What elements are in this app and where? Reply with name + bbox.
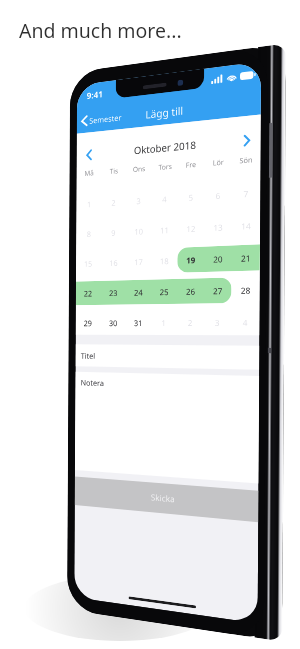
button[interactable]: 29 xyxy=(76,308,101,338)
button[interactable]: 2 xyxy=(177,307,204,338)
staticText: Tors xyxy=(158,162,172,173)
staticText: 26 xyxy=(186,285,196,297)
staticText: 8 xyxy=(87,228,91,239)
staticText: 4 xyxy=(243,316,248,328)
staticText: 16 xyxy=(109,257,118,268)
staticText: 21 xyxy=(241,252,252,264)
staticText: 3 xyxy=(215,317,220,328)
staticText: 31 xyxy=(134,317,143,328)
staticText: 29 xyxy=(84,317,93,328)
staticText: 4 xyxy=(162,193,167,204)
staticText: 19 xyxy=(186,254,196,265)
button[interactable]: 25 xyxy=(151,276,177,307)
button[interactable]: 1 xyxy=(76,188,101,219)
staticText: 9:41 xyxy=(87,87,103,101)
staticText: 11 xyxy=(160,224,170,235)
staticText: Lör xyxy=(213,157,224,169)
staticText: 22 xyxy=(84,288,93,298)
staticText: 18 xyxy=(160,255,169,266)
staticText: 27 xyxy=(213,285,223,296)
staticText: 6 xyxy=(216,189,221,201)
staticText: Semester xyxy=(89,111,122,126)
staticText: 30 xyxy=(109,317,118,328)
button[interactable]: 26 xyxy=(177,275,204,307)
staticText: Notera xyxy=(81,377,104,388)
staticText: 2 xyxy=(188,317,193,328)
button[interactable]: Semester xyxy=(77,107,128,131)
button[interactable]: 8 xyxy=(76,218,101,249)
staticText: 23 xyxy=(109,287,118,298)
staticText: 14 xyxy=(241,220,252,232)
button[interactable]: 24 xyxy=(126,276,151,307)
staticText: 24 xyxy=(134,287,143,298)
staticText: 1 xyxy=(161,317,166,328)
button[interactable]: 27 xyxy=(204,274,231,307)
staticText: 2 xyxy=(111,197,116,208)
staticText: 7 xyxy=(243,188,249,199)
staticText: Fre xyxy=(186,160,197,171)
staticText: 3 xyxy=(136,195,141,206)
button[interactable]: 23 xyxy=(101,277,126,308)
staticText: 17 xyxy=(134,256,144,267)
staticText: Må xyxy=(84,168,94,179)
staticText: Lägg till xyxy=(145,104,183,122)
button[interactable]: Skicka xyxy=(75,476,258,522)
button[interactable]: 3 xyxy=(204,306,231,338)
button[interactable]: Next month xyxy=(236,128,257,151)
staticText: Ons xyxy=(133,164,146,175)
staticText: 5 xyxy=(188,191,193,203)
staticText: 25 xyxy=(160,286,169,297)
button[interactable]: 4 xyxy=(231,306,260,338)
button[interactable]: 19 xyxy=(177,244,204,276)
staticText: 15 xyxy=(84,258,93,269)
button[interactable]: 22 xyxy=(76,278,101,308)
staticText: Titel xyxy=(81,350,95,361)
staticText: 28 xyxy=(241,284,251,296)
button[interactable]: 21 xyxy=(231,241,260,274)
staticText: And much more... xyxy=(19,17,182,44)
staticText: Tis xyxy=(110,166,119,177)
staticText: 12 xyxy=(186,223,196,234)
button[interactable]: 31 xyxy=(125,307,151,338)
staticText: 9 xyxy=(111,227,116,238)
staticText: Skicka xyxy=(151,491,175,505)
staticText: 13 xyxy=(213,221,224,233)
staticText: 10 xyxy=(134,225,144,237)
button[interactable]: Previous month xyxy=(80,144,98,165)
button[interactable]: 28 xyxy=(231,274,260,306)
staticText: 20 xyxy=(213,253,223,265)
button[interactable]: 30 xyxy=(101,307,125,338)
staticText: Oktober 2018 xyxy=(134,137,197,157)
staticText: 1 xyxy=(87,198,91,209)
staticText: Sön xyxy=(239,155,253,166)
button[interactable]: 20 xyxy=(204,242,232,275)
button[interactable]: 1 xyxy=(151,307,177,338)
